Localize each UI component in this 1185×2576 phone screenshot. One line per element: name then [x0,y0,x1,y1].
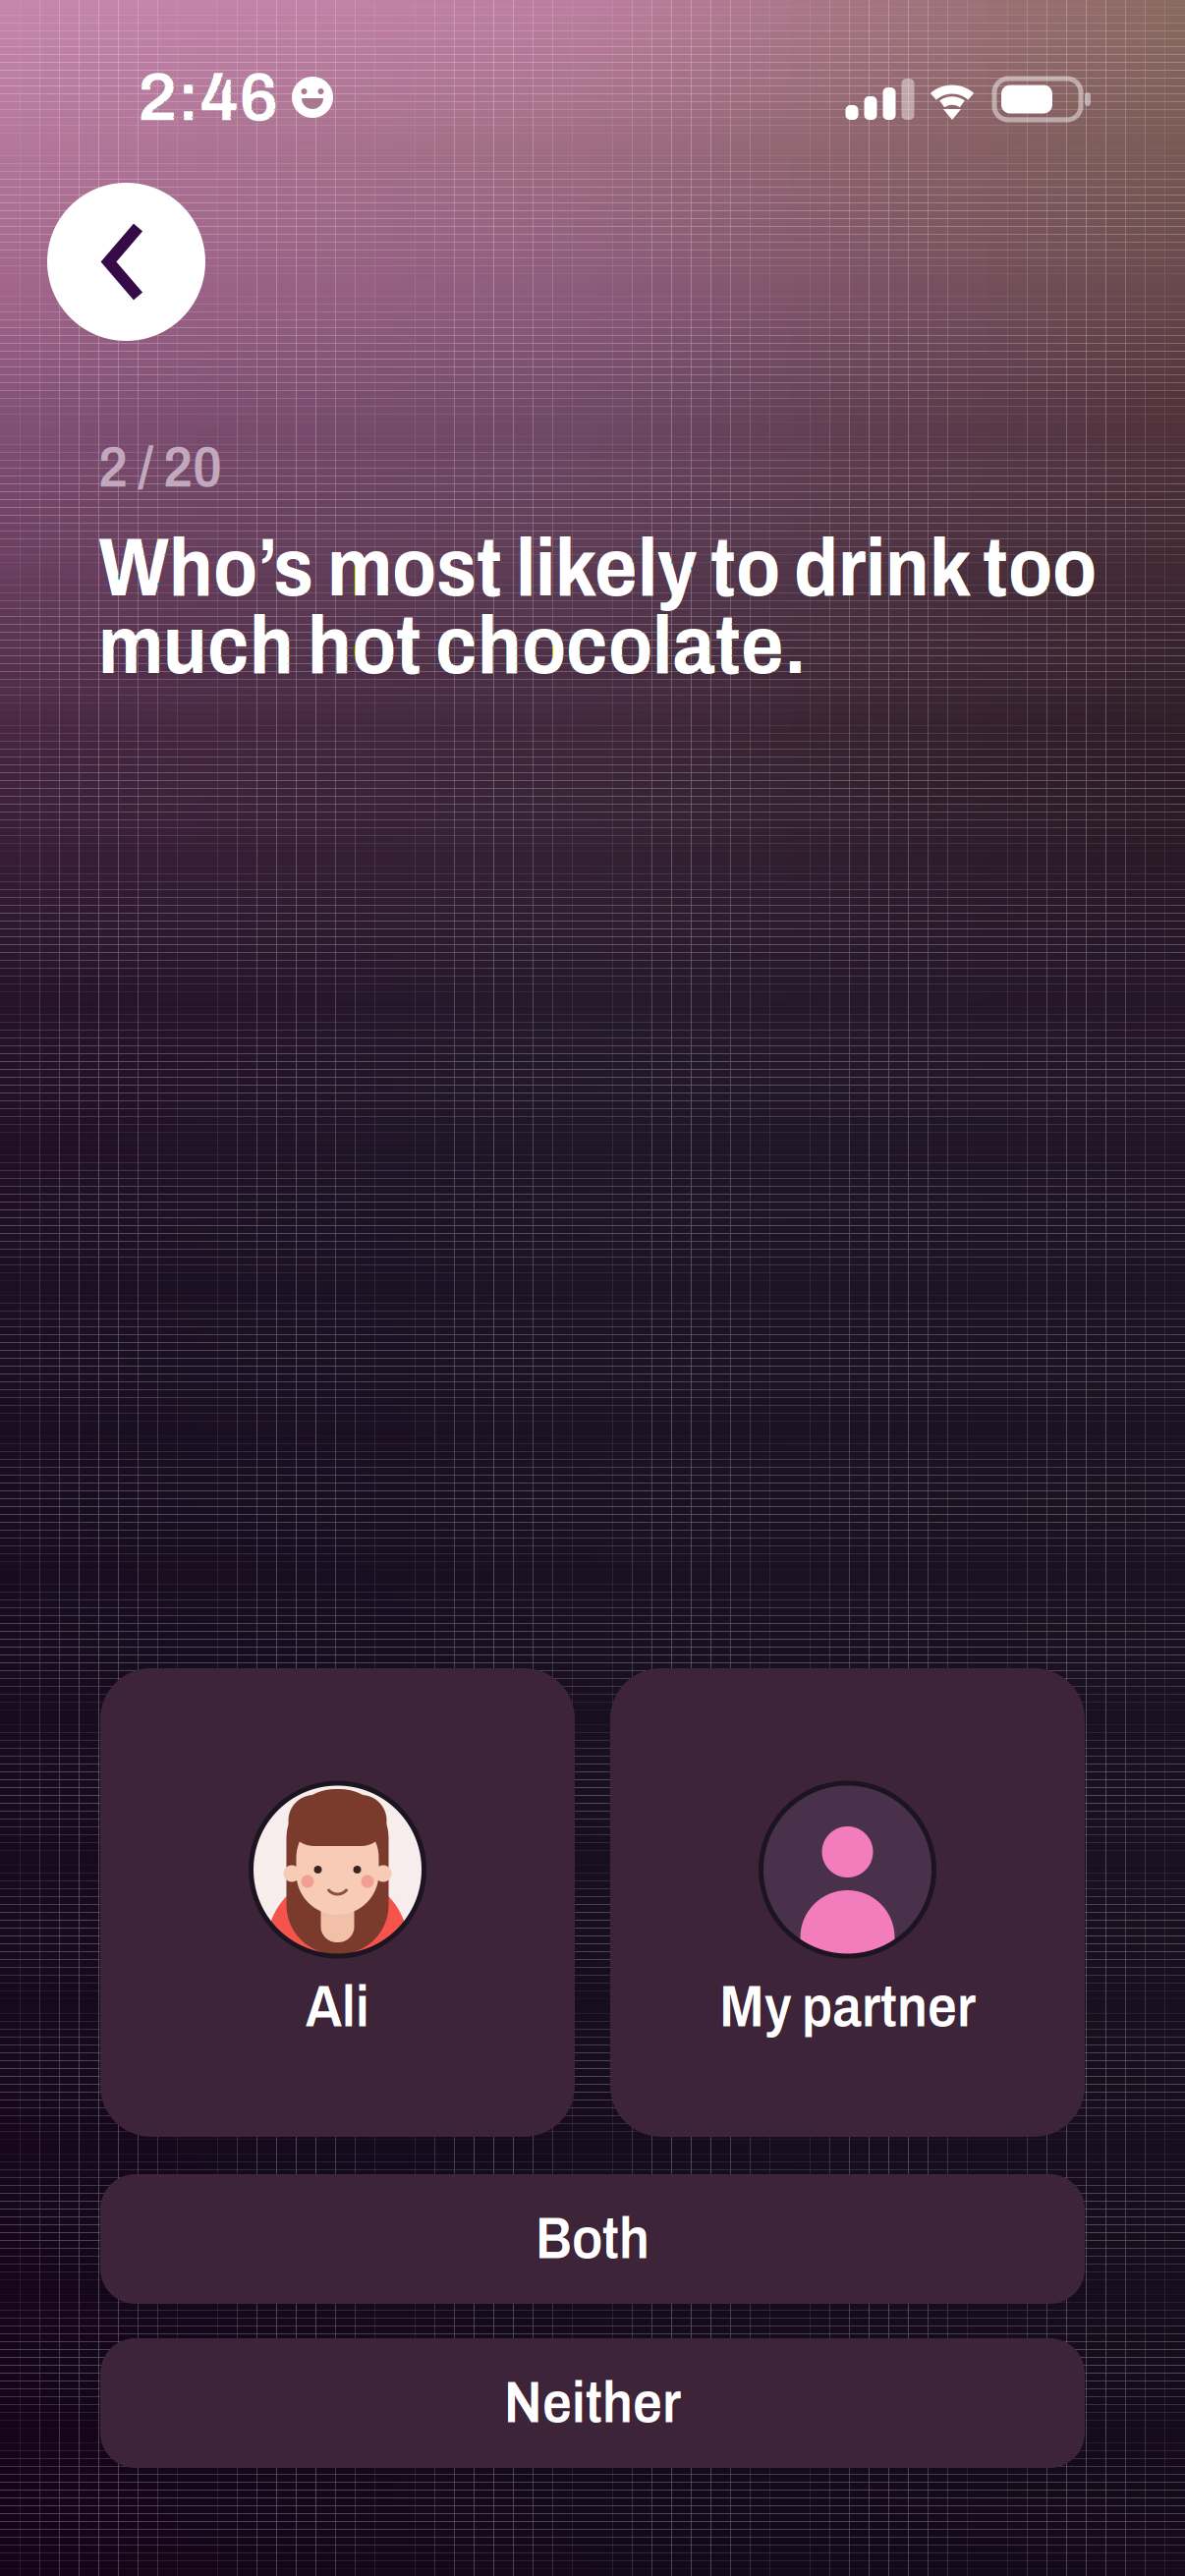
button[interactable]: Both [100,2174,1085,2304]
staticText: Who’s most likely to drink too much hot … [98,524,1097,690]
button[interactable]: Neither [100,2338,1085,2468]
staticText: Both [536,2208,649,2270]
button[interactable]: Back [47,183,205,341]
staticText: Neither [504,2372,681,2434]
staticText: Ali [306,1976,369,2038]
staticText: 2 / 20 [98,437,222,498]
button[interactable]: My partner [610,1668,1085,2137]
button[interactable]: Ali [100,1668,575,2137]
staticText: My partner [719,1976,976,2038]
staticText: 2:46 [138,60,278,134]
